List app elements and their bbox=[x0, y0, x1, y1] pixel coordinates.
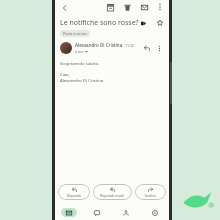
button[interactable]: Rispondi bbox=[58, 184, 90, 200]
staticText: Scopriamolo subito. bbox=[60, 61, 100, 67]
button[interactable]: Chat bbox=[83, 204, 111, 220]
button[interactable]: More bbox=[154, 43, 164, 53]
staticText: Alessandro Di Cristina bbox=[60, 78, 104, 84]
button[interactable]: Alessandro Di Cristina bbox=[60, 42, 164, 54]
button[interactable]: Reply bbox=[142, 43, 152, 53]
button[interactable]: Inoltra bbox=[135, 184, 166, 200]
button[interactable]: Back bbox=[59, 2, 70, 13]
staticText: Ciao, bbox=[60, 72, 70, 78]
staticText: Posta in arrivo bbox=[63, 31, 87, 36]
button[interactable]: Rispondi a tutti bbox=[93, 184, 132, 200]
button[interactable]: Mark unread bbox=[139, 2, 150, 13]
button[interactable]: More options bbox=[155, 2, 165, 12]
staticText: Alessandro Di Cristina bbox=[75, 42, 123, 48]
staticText: Rispondi a tutti bbox=[100, 193, 125, 198]
staticText: Inoltra bbox=[145, 193, 156, 198]
button[interactable]: Delete bbox=[122, 2, 133, 13]
button[interactable]: Archive bbox=[105, 2, 116, 13]
button[interactable]: Spaces bbox=[111, 204, 140, 220]
button[interactable]: Meet bbox=[140, 204, 169, 220]
button[interactable]: Mail bbox=[55, 204, 83, 220]
staticText: a me bbox=[75, 49, 84, 54]
staticText: Le notifiche sono rosse? bbox=[60, 18, 139, 28]
button[interactable]: Star bbox=[155, 18, 165, 28]
staticText: 11:32 bbox=[125, 43, 134, 48]
staticText: Rispondi bbox=[67, 193, 81, 198]
button[interactable]: Posta in arrivo bbox=[63, 31, 87, 36]
